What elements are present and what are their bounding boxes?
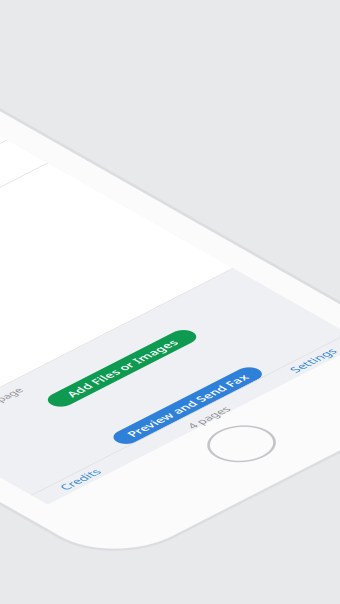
staticText: Message <box>98 541 209 577</box>
staticText: Subject <box>98 429 190 465</box>
staticText: Recipient fax number <box>98 317 340 353</box>
